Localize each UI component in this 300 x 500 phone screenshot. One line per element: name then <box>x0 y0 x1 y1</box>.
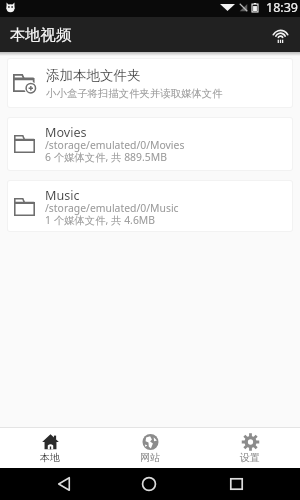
staticText: 6 个媒体文件, 共 889.5MB <box>45 150 167 164</box>
staticText: 1 个媒体文件, 共 4.6MB <box>45 213 156 227</box>
staticText: /storage/emulated/0/Music <box>45 201 179 215</box>
staticText: 设置 <box>240 451 260 464</box>
staticText: 网站 <box>140 451 160 464</box>
button[interactable]: 网站 <box>100 427 200 468</box>
staticText: 18:39 <box>266 0 298 16</box>
staticText: 添加本地文件夹 <box>46 67 141 84</box>
button[interactable]: Movies <box>8 118 292 170</box>
button[interactable]: Back <box>49 468 79 500</box>
button[interactable]: 本地 <box>0 427 100 468</box>
button[interactable]: Home <box>134 468 164 500</box>
button[interactable]: Music <box>8 181 292 231</box>
staticText: 本地视频 <box>10 25 72 44</box>
staticText: 本地 <box>40 451 60 464</box>
staticText: /storage/emulated/0/Movies <box>45 138 185 152</box>
staticText: 小小盒子将扫描文件夹并读取媒体文件 <box>46 87 223 100</box>
button[interactable]: Recent apps <box>221 468 251 500</box>
button[interactable]: Cast to device <box>265 20 295 50</box>
button[interactable]: 添加本地文件夹 <box>8 59 292 107</box>
button[interactable]: 设置 <box>200 427 300 468</box>
staticText: Music <box>45 187 80 204</box>
staticText: Movies <box>45 124 87 141</box>
